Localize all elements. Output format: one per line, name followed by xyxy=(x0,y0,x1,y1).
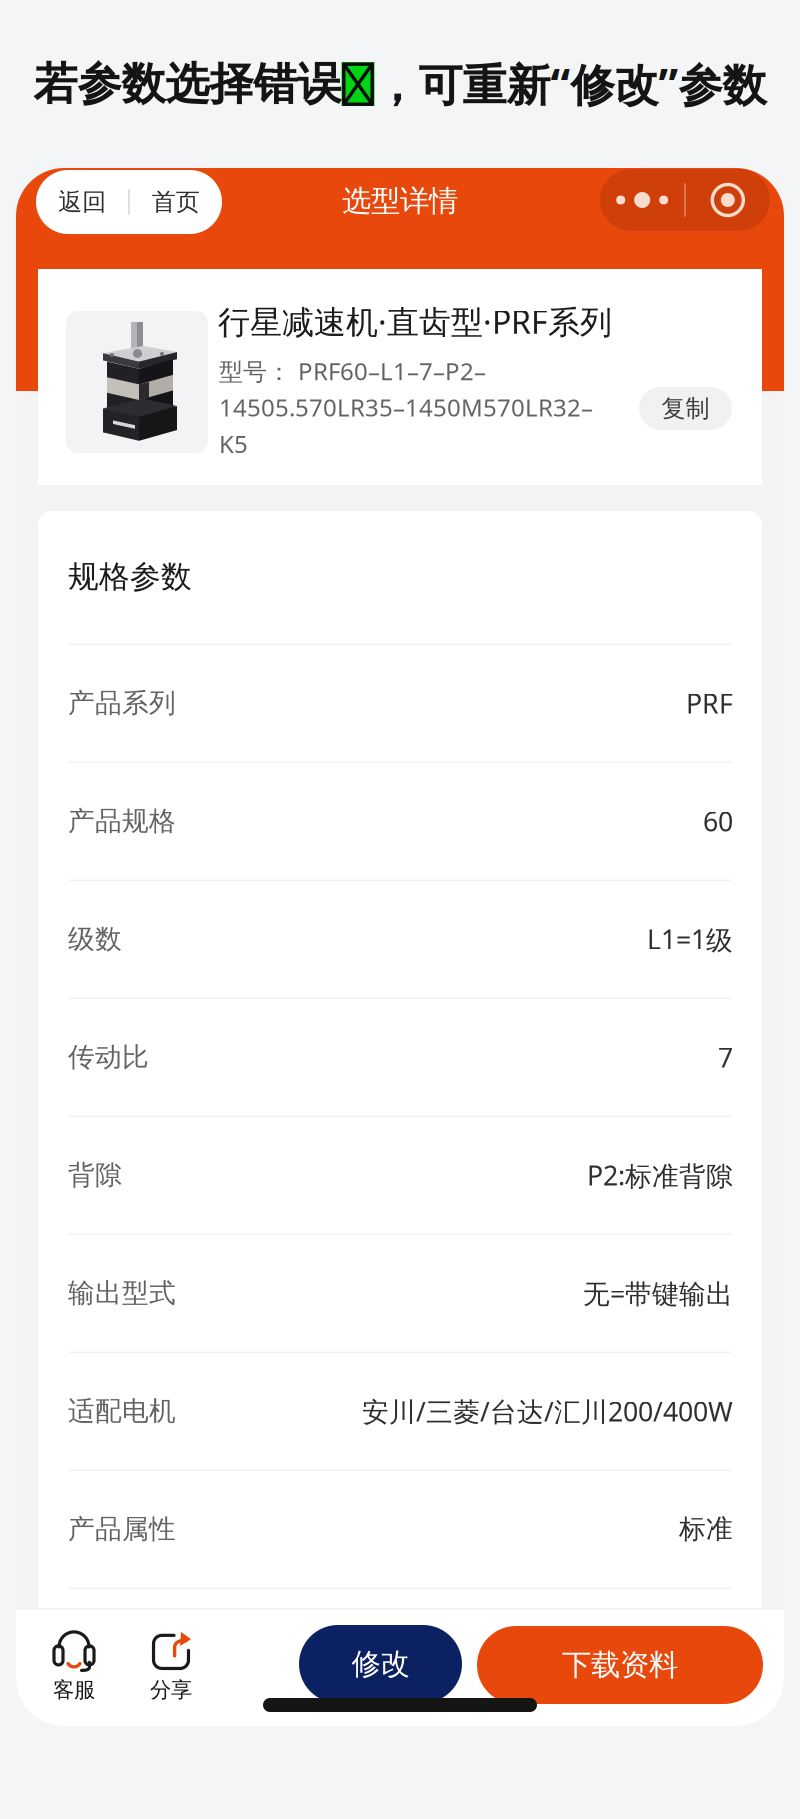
staticText: ，可重新“修改”参数 xyxy=(374,55,766,113)
button[interactable]: 返回 xyxy=(36,170,222,234)
button[interactable]: 关闭 xyxy=(686,169,770,231)
staticText: 规格参数 xyxy=(68,558,192,596)
staticText: 复制 xyxy=(661,394,709,423)
button[interactable]: 客服 xyxy=(36,1628,112,1706)
staticText: 产品规格 xyxy=(68,805,176,838)
staticText: 分享 xyxy=(150,1677,192,1703)
staticText: 7 xyxy=(718,1039,733,1075)
staticText: 产品系列 xyxy=(68,687,176,720)
staticText: 60 xyxy=(703,803,733,839)
staticText: 若参数选择错误 xyxy=(33,57,341,111)
staticText: 产品属性 xyxy=(68,1513,176,1546)
staticText: 修改 xyxy=(351,1646,409,1682)
staticText: 标准 xyxy=(679,1513,733,1546)
button[interactable]: 下载资料 xyxy=(477,1626,763,1704)
button[interactable]: 修改 xyxy=(299,1625,462,1703)
staticText: 无=带键输出 xyxy=(583,1275,733,1311)
staticText: 客服 xyxy=(53,1677,95,1703)
staticText: 适配电机 xyxy=(68,1395,176,1428)
button[interactable]: 分享 xyxy=(133,1628,209,1706)
staticText: 级数 xyxy=(68,923,122,956)
staticText: 型号： PRF60–L1–7–P2–14505.570LR35–1450M570… xyxy=(219,355,593,460)
staticText: L1=1级 xyxy=(647,921,733,957)
button[interactable]: 更多 xyxy=(600,169,684,231)
staticText: P2:标准背隙 xyxy=(587,1157,733,1193)
staticText: 返回 xyxy=(58,187,106,217)
staticText: 输出型式 xyxy=(68,1277,176,1310)
staticText: 安川/三菱/台达/汇川200/400W xyxy=(362,1393,733,1429)
staticText: 传动比 xyxy=(68,1041,149,1074)
staticText: 背隙 xyxy=(68,1159,122,1192)
staticText: 下载资料 xyxy=(562,1647,678,1683)
button[interactable]: 复制 xyxy=(639,387,732,430)
staticText: 行星减速机·直齿型·PRF系列 xyxy=(218,300,612,342)
staticText: 首页 xyxy=(152,187,200,217)
staticText: 选型详情 xyxy=(342,183,458,219)
staticText: PRF xyxy=(686,685,733,721)
